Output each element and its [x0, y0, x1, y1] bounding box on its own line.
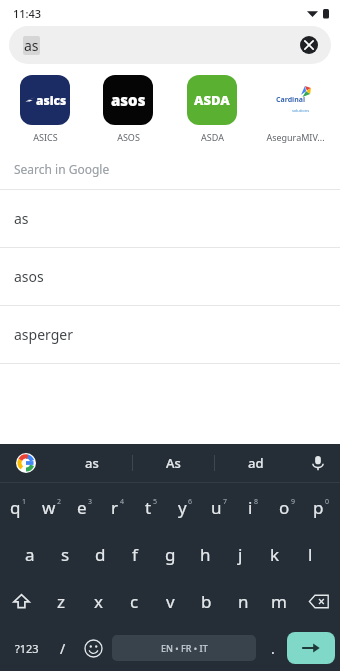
button[interactable]: Emoji: [77, 625, 109, 671]
staticText: .: [271, 639, 275, 658]
staticText: 5: [153, 497, 158, 507]
button[interactable]: j: [227, 531, 253, 578]
staticText: a: [25, 543, 35, 566]
staticText: asics: [36, 92, 67, 108]
staticText: 0: [325, 497, 330, 507]
button[interactable]: asics: [7, 74, 83, 143]
staticText: as: [85, 454, 99, 472]
staticText: y: [178, 496, 187, 519]
button[interactable]: .: [259, 625, 287, 671]
staticText: c: [130, 590, 139, 613]
staticText: h: [200, 543, 211, 566]
button[interactable]: Search in Google: [0, 149, 340, 189]
staticText: s: [61, 543, 70, 566]
button[interactable]: z: [48, 578, 74, 625]
button[interactable]: as: [9, 26, 331, 64]
staticText: e: [77, 496, 87, 519]
button[interactable]: /: [49, 625, 77, 671]
staticText: ASICS: [33, 131, 58, 143]
button[interactable]: as: [0, 190, 340, 247]
staticText: z: [57, 590, 65, 613]
button[interactable]: Clear search: [297, 33, 321, 57]
staticText: d: [95, 543, 106, 566]
button[interactable]: asperger: [0, 306, 340, 363]
button[interactable]: q: [2, 483, 35, 531]
button[interactable]: asos: [0, 248, 340, 305]
staticText: l: [308, 543, 313, 566]
button[interactable]: ?123: [5, 625, 49, 671]
button[interactable]: r: [101, 483, 134, 531]
button[interactable]: a: [17, 531, 43, 578]
button[interactable]: d: [87, 531, 113, 578]
staticText: p: [313, 496, 324, 519]
staticText: t: [145, 496, 152, 519]
staticText: asos: [111, 90, 146, 110]
button[interactable]: u: [202, 483, 236, 531]
button[interactable]: o: [270, 483, 304, 531]
button[interactable]: n: [230, 578, 256, 625]
button[interactable]: k: [262, 531, 288, 578]
staticText: ASDA: [194, 91, 230, 109]
staticText: Search in Google: [14, 161, 110, 177]
staticText: o: [279, 496, 290, 519]
staticText: ASDA: [201, 131, 224, 143]
staticText: 4: [120, 497, 125, 507]
button[interactable]: w: [35, 483, 68, 531]
button[interactable]: asos: [90, 74, 166, 143]
button[interactable]: Shift: [4, 578, 38, 625]
button[interactable]: t: [134, 483, 168, 531]
staticText: f: [132, 543, 138, 566]
staticText: 11:43: [13, 6, 42, 21]
button[interactable]: Backspace: [302, 578, 336, 625]
staticText: ad: [248, 454, 264, 472]
staticText: 2: [57, 497, 62, 507]
staticText: EN • FR • IT: [161, 642, 208, 654]
staticText: as: [14, 209, 29, 228]
button[interactable]: m: [266, 578, 292, 625]
staticText: ASOS: [117, 131, 140, 143]
button[interactable]: y: [168, 483, 202, 531]
button[interactable]: p: [304, 483, 338, 531]
button[interactable]: e: [68, 483, 101, 531]
staticText: x: [94, 590, 103, 613]
staticText: 8: [254, 497, 259, 507]
button[interactable]: Enter: [287, 632, 335, 664]
button[interactable]: Space: [112, 635, 256, 661]
staticText: 9: [291, 497, 296, 507]
staticText: i: [248, 496, 253, 519]
button[interactable]: g: [157, 531, 183, 578]
button[interactable]: ad: [215, 444, 296, 482]
staticText: j: [238, 543, 243, 566]
staticText: m: [271, 590, 287, 613]
button[interactable]: i: [236, 483, 270, 531]
button[interactable]: h: [192, 531, 218, 578]
staticText: 7: [223, 497, 228, 507]
staticText: q: [10, 496, 21, 519]
staticText: Cardinal: [276, 95, 306, 105]
button[interactable]: as: [52, 444, 132, 482]
button[interactable]: l: [297, 531, 323, 578]
button[interactable]: c: [121, 578, 147, 625]
button[interactable]: b: [193, 578, 219, 625]
button[interactable]: Voice input: [296, 444, 340, 482]
staticText: 6: [188, 497, 193, 507]
staticText: k: [270, 543, 280, 566]
staticText: /: [60, 639, 66, 658]
staticText: as: [24, 36, 39, 55]
button[interactable]: s: [52, 531, 78, 578]
button[interactable]: f: [122, 531, 148, 578]
button[interactable]: As: [133, 444, 214, 482]
button[interactable]: Cardinal: [257, 74, 333, 143]
staticText: solutions: [292, 108, 310, 113]
staticText: As: [166, 454, 181, 472]
button[interactable]: Google: [0, 444, 52, 482]
staticText: asperger: [14, 325, 73, 344]
staticText: 1: [22, 497, 27, 507]
staticText: w: [42, 496, 56, 519]
button[interactable]: ASDA: [174, 74, 250, 143]
staticText: 3: [88, 497, 93, 507]
staticText: b: [201, 590, 212, 613]
button[interactable]: x: [85, 578, 111, 625]
staticText: AseguraMIV...: [266, 131, 325, 143]
button[interactable]: v: [157, 578, 183, 625]
